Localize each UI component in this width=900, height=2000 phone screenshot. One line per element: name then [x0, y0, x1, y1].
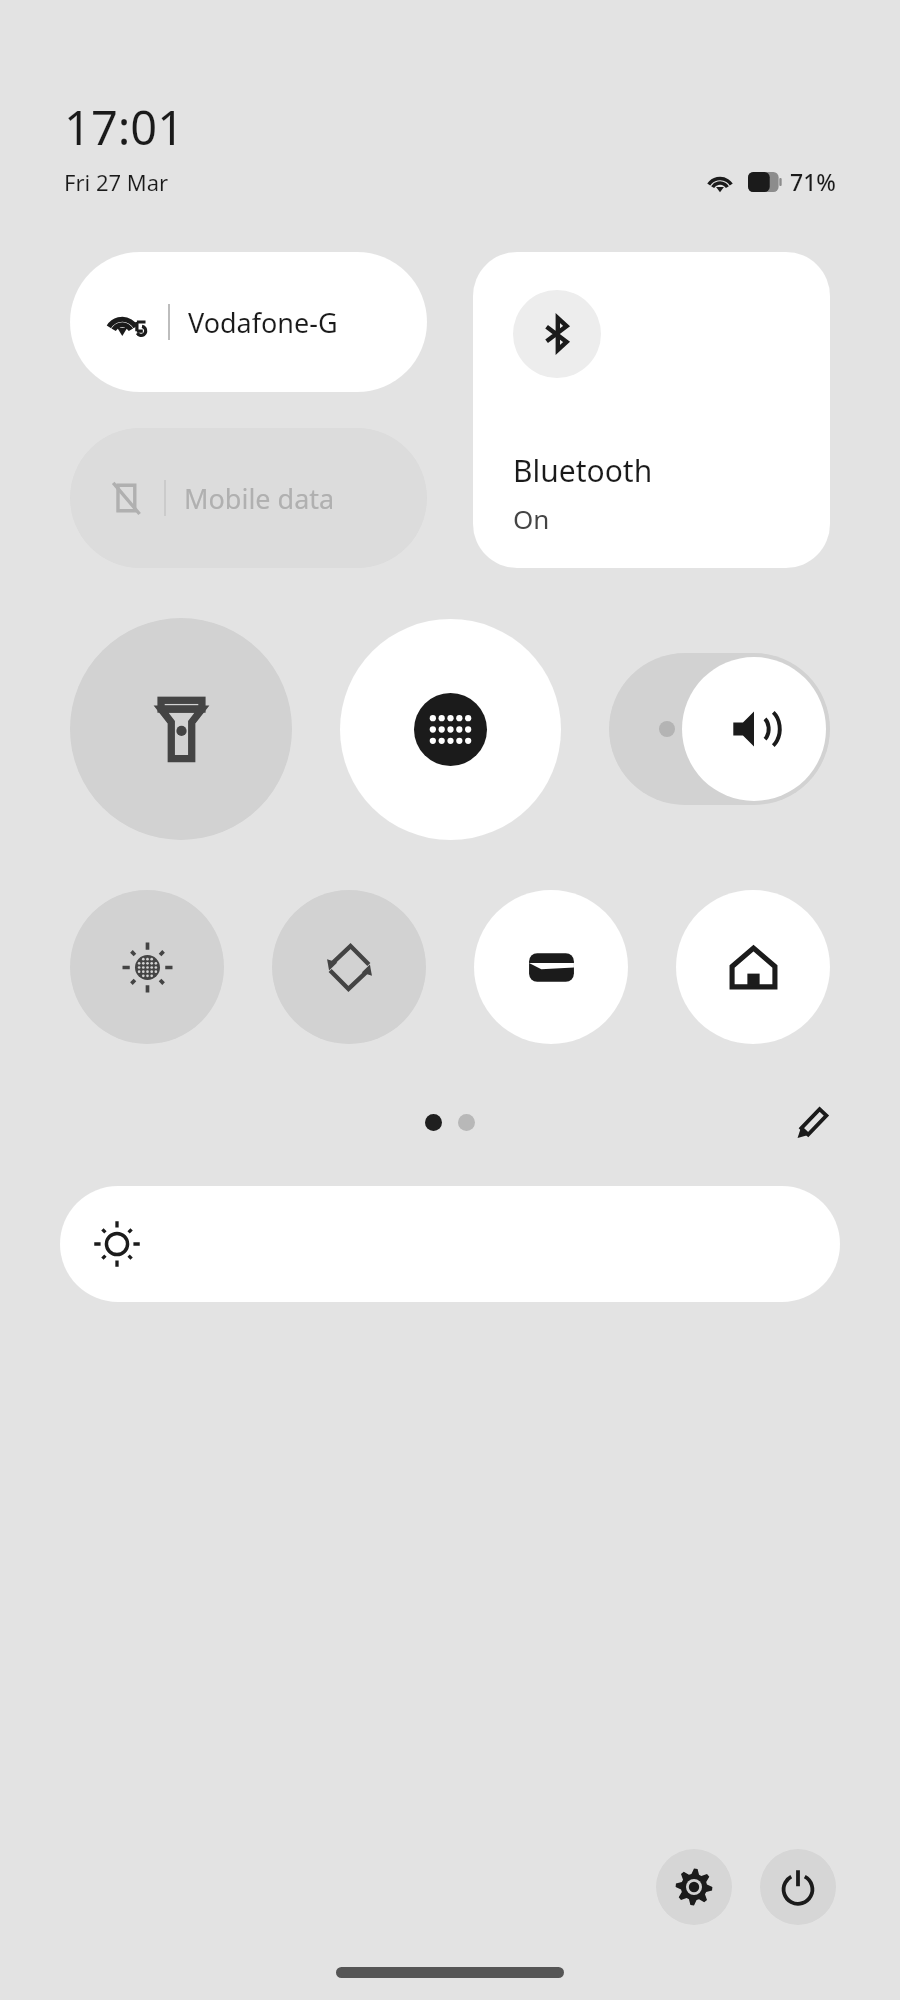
staticText: On [513, 501, 550, 536]
staticText: Bluetooth [513, 450, 653, 491]
button[interactable]: Screen recorder [340, 619, 561, 840]
staticText: 71% [790, 166, 836, 197]
button[interactable]: Auto rotate [272, 890, 426, 1044]
button[interactable]: Wallet [474, 890, 628, 1044]
button[interactable]: Settings [656, 1849, 732, 1925]
button[interactable]: Power [760, 1849, 836, 1925]
staticText: Fri 27 Mar [64, 167, 169, 197]
staticText: Mobile data [184, 480, 335, 517]
button[interactable]: Home [676, 890, 830, 1044]
button[interactable]: Bluetooth [473, 252, 830, 568]
button[interactable]: Vodafone-G [70, 252, 427, 392]
button[interactable]: Mobile data [70, 428, 427, 568]
button[interactable]: Volume [609, 653, 830, 805]
button[interactable]: Edit tiles [782, 1092, 842, 1152]
staticText: Vodafone-G [188, 304, 338, 341]
button[interactable]: Flashlight [70, 618, 292, 840]
button[interactable]: Brightness [60, 1186, 840, 1302]
button[interactable]: Auto brightness [70, 890, 224, 1044]
staticText: 17:01 [64, 95, 185, 159]
